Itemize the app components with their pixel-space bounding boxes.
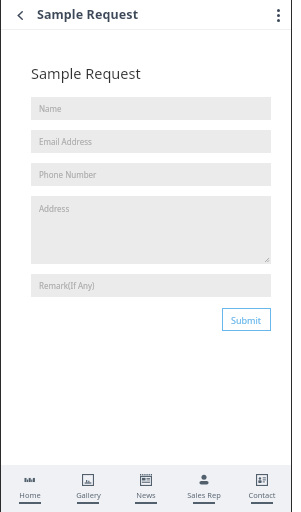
- button[interactable]: Phone Number: [31, 163, 271, 186]
- staticText: Address: [39, 203, 70, 214]
- button[interactable]: Remark(If Any): [31, 274, 271, 297]
- staticText: Phone Number: [39, 169, 97, 180]
- button[interactable]: Address: [31, 196, 271, 264]
- staticText: Name: [39, 103, 62, 114]
- button[interactable]: Contact: [233, 465, 291, 512]
- button[interactable]: Name: [31, 97, 271, 120]
- button[interactable]: Submit: [222, 308, 271, 331]
- button[interactable]: Home: [1, 465, 59, 512]
- staticText: Sample Request: [37, 6, 139, 23]
- button[interactable]: Gallery: [59, 465, 117, 512]
- button[interactable]: More options: [267, 4, 289, 26]
- staticText: Remark(If Any): [39, 280, 95, 291]
- staticText: Sample Request: [31, 63, 141, 83]
- button[interactable]: News: [117, 465, 175, 512]
- button[interactable]: Sales Rep: [175, 465, 233, 512]
- staticText: News: [136, 490, 156, 500]
- staticText: Sales Rep: [187, 490, 221, 500]
- button[interactable]: Back: [10, 5, 30, 25]
- staticText: Contact: [248, 490, 276, 500]
- button[interactable]: Email Address: [31, 130, 271, 153]
- staticText: Home: [19, 490, 41, 500]
- staticText: Gallery: [76, 490, 101, 500]
- staticText: Email Address: [39, 136, 92, 147]
- staticText: Submit: [231, 314, 262, 326]
